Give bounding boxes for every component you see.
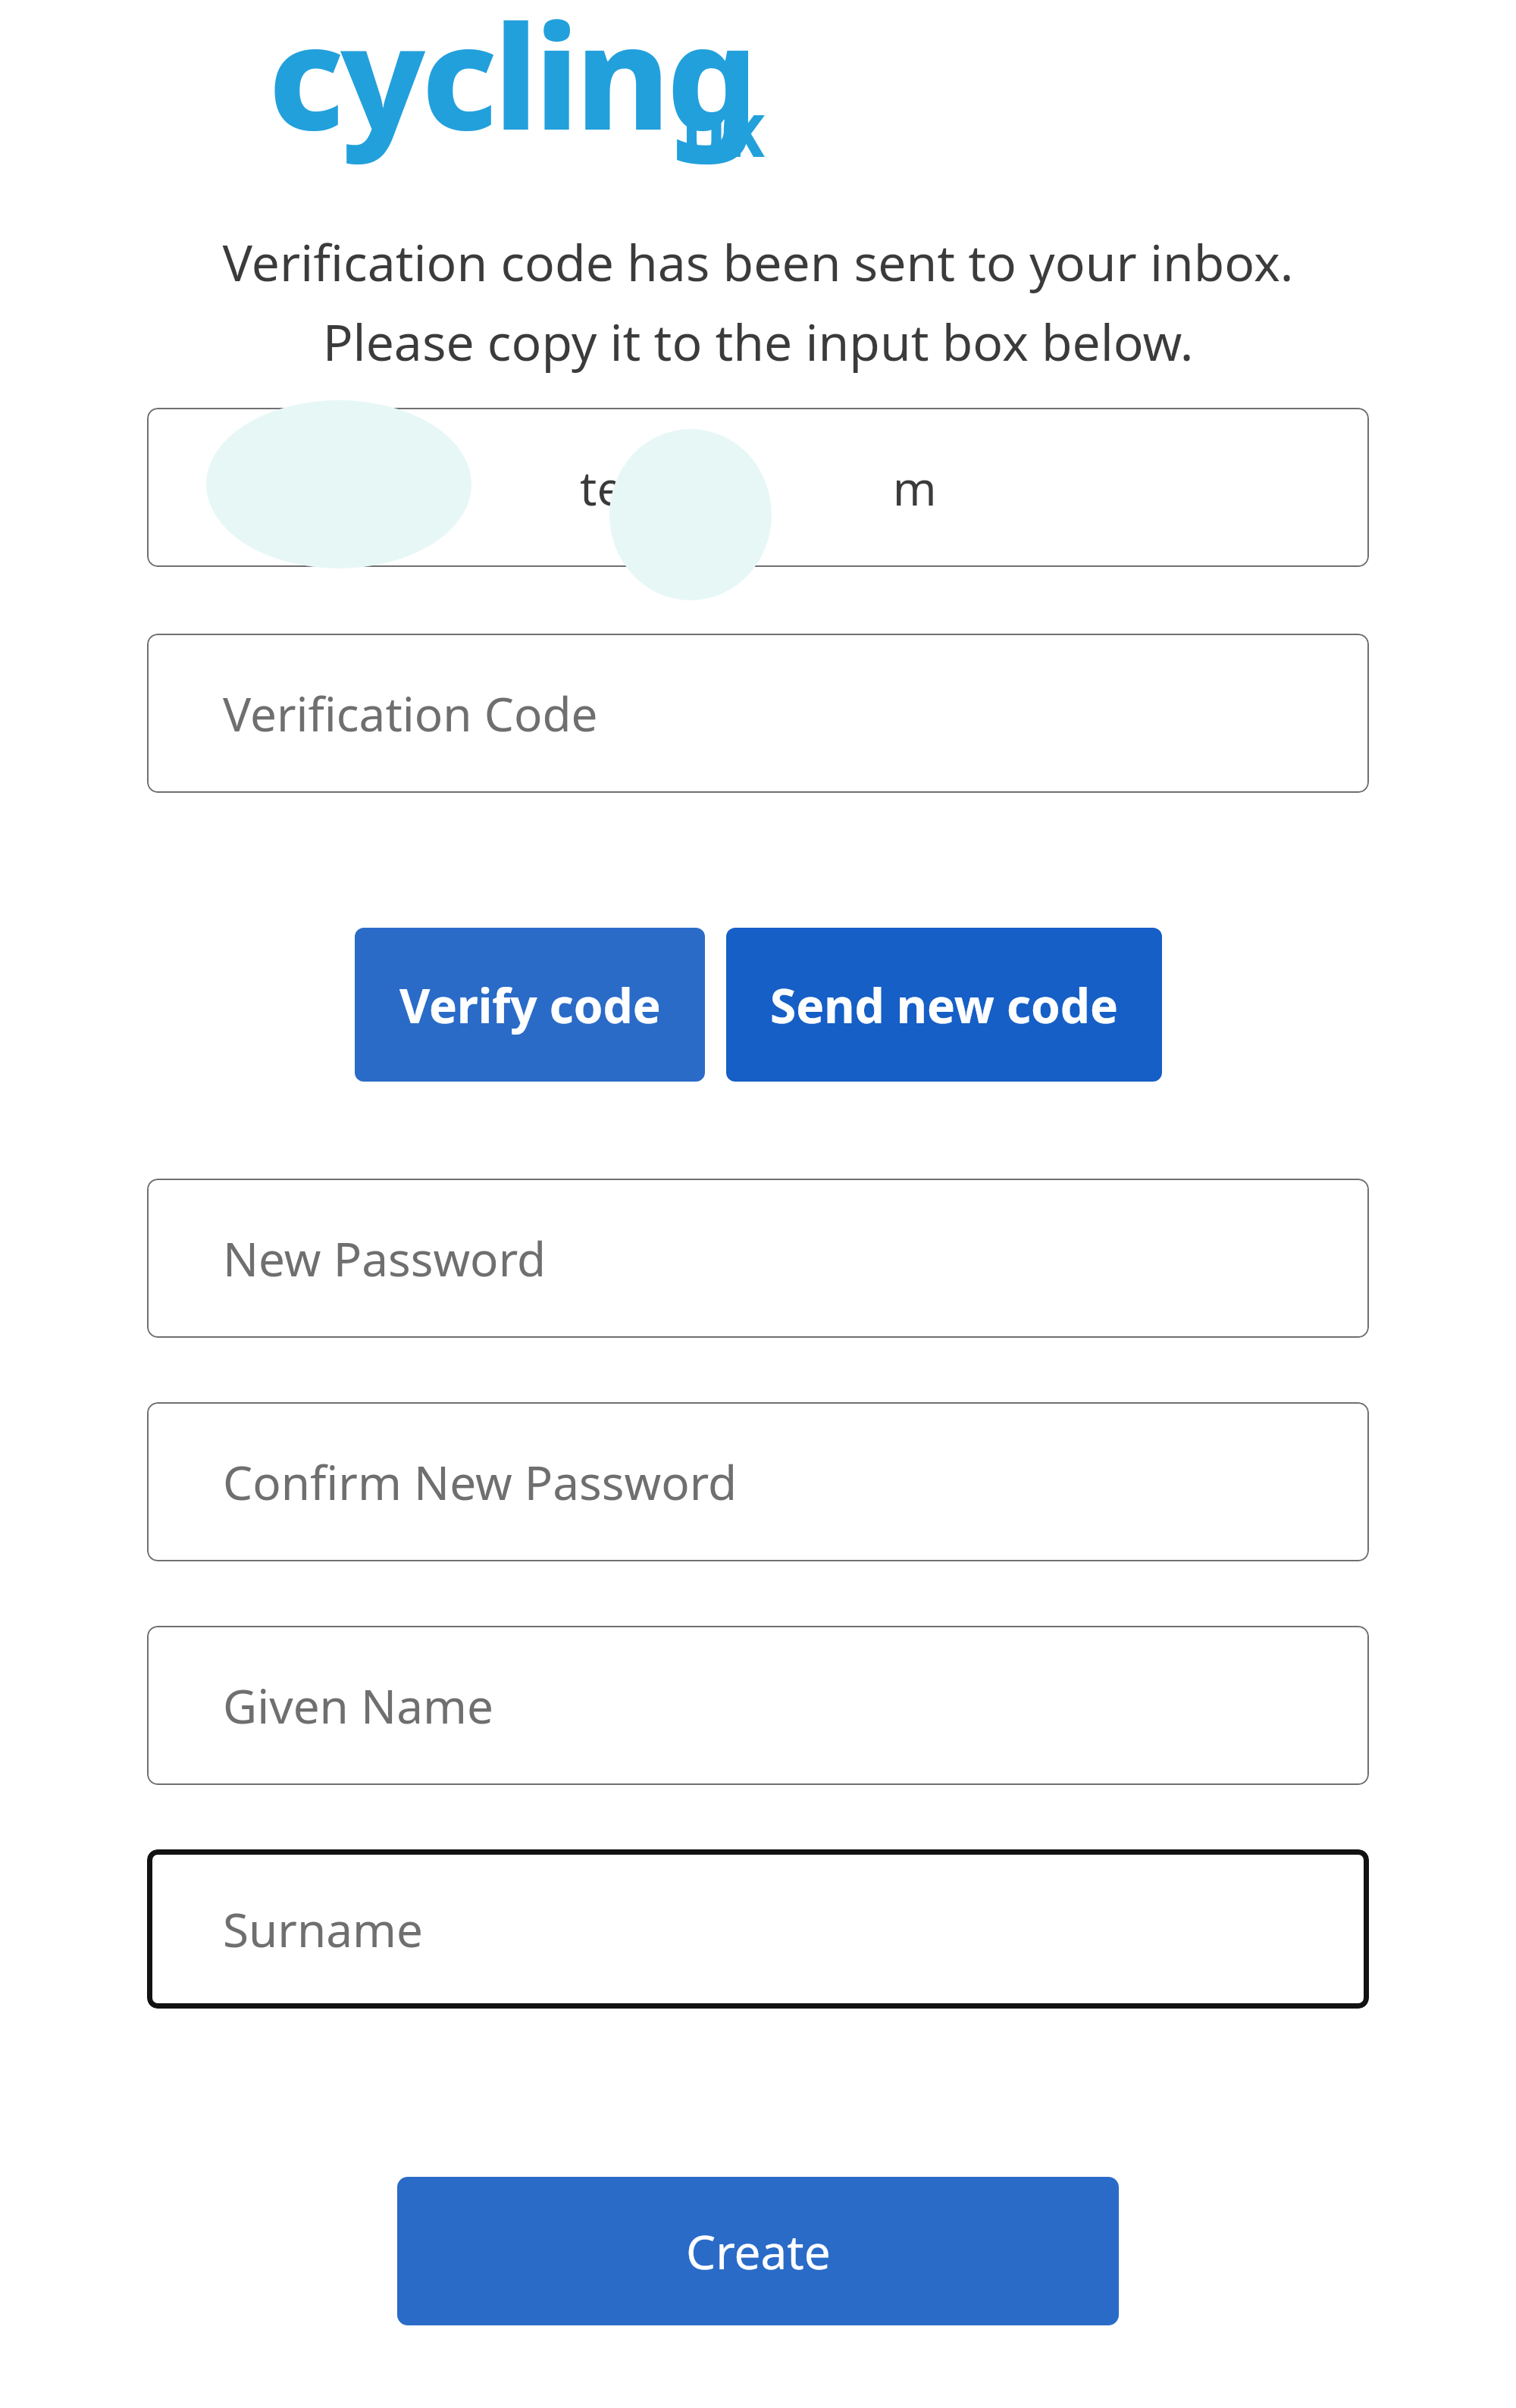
staticText: Confirm New Password	[223, 1450, 738, 1514]
staticText: cycling	[268, 0, 755, 172]
button[interactable]: Confirm New Password	[147, 1402, 1369, 1561]
other: Redacted email	[0, 0, 1516, 2408]
staticText: Create	[686, 2219, 831, 2283]
button[interactable]: Create	[397, 2177, 1119, 2325]
button[interactable]: Verify code	[355, 928, 705, 1082]
staticText: Send new code	[770, 973, 1118, 1037]
button[interactable]: Given Name	[147, 1626, 1369, 1785]
button[interactable]: Verification Code	[147, 634, 1369, 793]
button[interactable]: test@g m	[147, 408, 1369, 567]
staticText: UK	[682, 96, 765, 174]
staticText: Verification code has been sent to your …	[147, 227, 1369, 376]
button[interactable]: New Password	[147, 1179, 1369, 1338]
staticText: test@g m	[580, 456, 937, 519]
staticText: New Password	[223, 1226, 547, 1290]
button[interactable]: Surname	[147, 1849, 1369, 2009]
staticText: Given Name	[223, 1674, 493, 1737]
staticText: Surname	[223, 1897, 423, 1961]
button[interactable]: Send new code	[726, 928, 1162, 1082]
staticText: Verify code	[399, 973, 661, 1037]
staticText: Verification Code	[223, 681, 598, 745]
